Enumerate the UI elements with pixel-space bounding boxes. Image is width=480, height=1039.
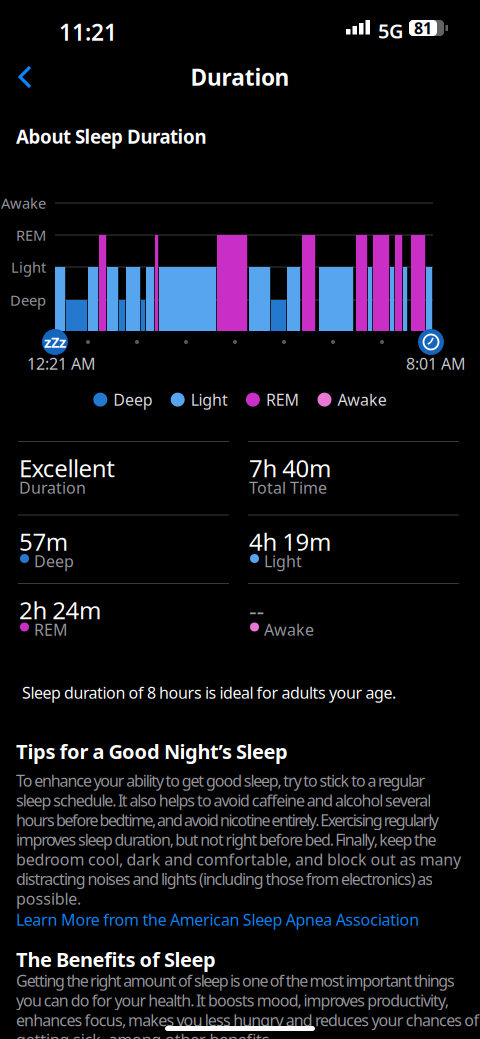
- staticText: bedroom cool, dark and comfortable, and …: [16, 849, 461, 870]
- staticText: Excellent: [19, 452, 115, 484]
- staticText: REM: [266, 389, 299, 410]
- staticText: About Sleep Duration: [16, 124, 206, 149]
- staticText: zZz: [44, 332, 66, 352]
- staticText: Deep: [113, 389, 153, 410]
- staticText: enhances focus, makes you less hungry an…: [16, 1009, 479, 1030]
- staticText: REM: [16, 225, 46, 245]
- staticText: 57m: [19, 525, 68, 557]
- staticText: you can do for your health. It boosts mo…: [16, 990, 449, 1011]
- staticText: --: [249, 594, 264, 626]
- staticText: REM: [34, 619, 68, 640]
- staticText: improves sleep duration, but not right b…: [16, 829, 437, 850]
- staticText: getting sick, among other benefits.: [16, 1029, 273, 1039]
- staticText: 2h 24m: [19, 594, 101, 626]
- staticText: distracting noises and lights (including…: [16, 868, 433, 889]
- staticText: Total Time: [249, 477, 327, 498]
- staticText: possible.: [16, 888, 81, 909]
- staticText: Getting the right amount of sleep is one…: [16, 970, 455, 991]
- staticText: 7h 40m: [249, 452, 331, 484]
- staticText: hours before bedtime, and avoid nicotine…: [16, 809, 439, 830]
- staticText: Tips for a Good Night’s Sleep: [16, 738, 288, 765]
- staticText: 8:01 AM: [406, 353, 466, 374]
- staticText: 12:21 AM: [27, 353, 96, 374]
- button[interactable]: [16, 65, 40, 89]
- staticText: Deep: [34, 550, 74, 572]
- button[interactable]: Learn More from the American Sleep Apnea…: [16, 909, 419, 930]
- staticText: 4h 19m: [249, 525, 331, 557]
- staticText: 5G: [378, 17, 404, 44]
- staticText: sleep schedule. It also helps to avoid c…: [16, 790, 431, 811]
- staticText: Awake: [264, 619, 314, 640]
- staticText: The Benefits of Sleep: [16, 946, 216, 973]
- staticText: Sleep duration of 8 hours is ideal for a…: [22, 682, 396, 703]
- staticText: To enhance your ability to get good slee…: [16, 770, 426, 791]
- staticText: Awake: [1, 193, 46, 213]
- staticText: Light: [11, 257, 46, 277]
- staticText: Duration: [19, 477, 86, 498]
- staticText: 11:21: [59, 17, 117, 47]
- staticText: Deep: [10, 290, 46, 310]
- staticText: Duration: [190, 62, 290, 92]
- staticText: Light: [191, 389, 228, 410]
- staticText: Light: [264, 550, 302, 572]
- staticText: Learn More from the American Sleep Apnea…: [16, 909, 419, 930]
- staticText: Awake: [337, 389, 387, 410]
- staticText: 81: [414, 17, 432, 39]
